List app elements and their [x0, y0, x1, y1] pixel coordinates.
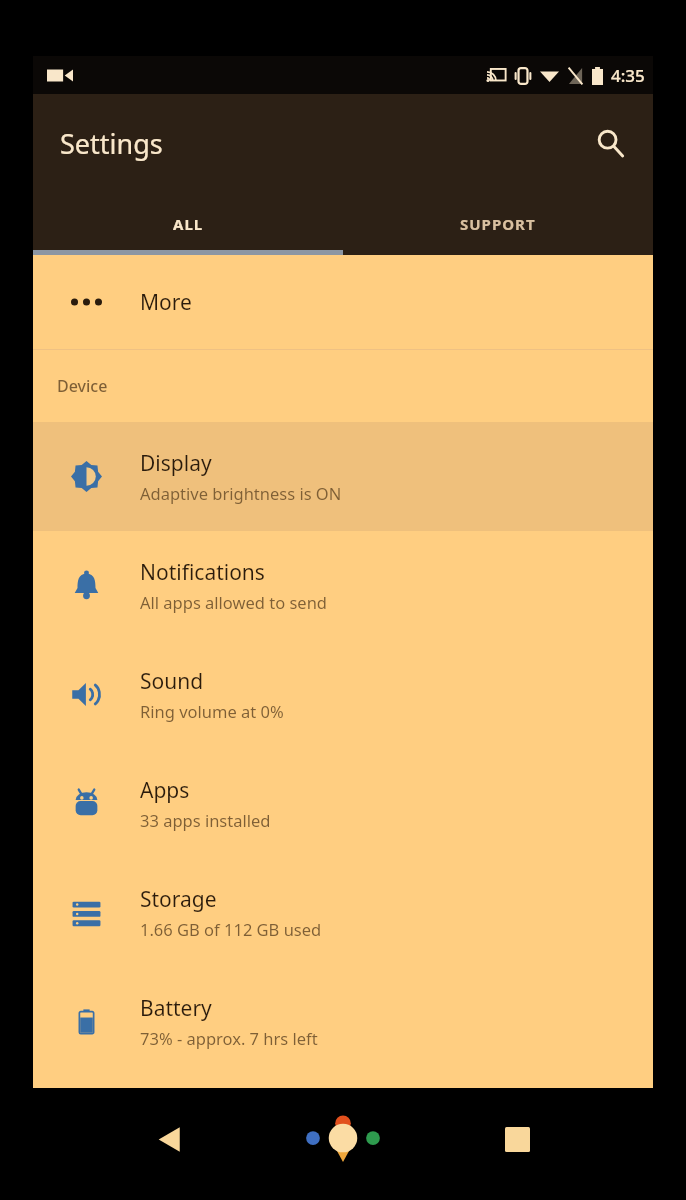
staticText: Battery	[140, 994, 212, 1023]
button[interactable]: Sound	[33, 640, 653, 749]
staticText: 33 apps installed	[140, 809, 271, 831]
button[interactable]: Storage	[33, 858, 653, 967]
staticText: More	[140, 288, 192, 317]
staticText: Storage	[140, 885, 217, 914]
staticText: Device	[57, 375, 108, 397]
button[interactable]: ALL	[33, 192, 343, 255]
button[interactable]: Recent apps	[480, 1102, 554, 1176]
staticText: Apps	[140, 776, 190, 805]
staticText: Notifications	[140, 558, 265, 587]
staticText: All apps allowed to send	[140, 591, 328, 613]
button[interactable]: Search	[583, 116, 637, 170]
button[interactable]: Battery	[33, 967, 653, 1076]
button[interactable]: Display	[33, 422, 653, 531]
staticText: Display	[140, 449, 212, 478]
button[interactable]: Back	[132, 1102, 206, 1176]
staticText: Adaptive brightness is ON	[140, 482, 342, 504]
staticText: 4:35	[611, 64, 645, 87]
staticText: Settings	[60, 125, 163, 162]
staticText: ALL	[173, 214, 204, 234]
button[interactable]: More	[33, 255, 653, 349]
staticText: Ring volume at 0%	[140, 700, 284, 722]
staticText: Sound	[140, 667, 204, 696]
button[interactable]: Notifications	[33, 531, 653, 640]
button[interactable]: Home	[288, 1102, 398, 1176]
button[interactable]: Apps	[33, 749, 653, 858]
staticText: 1.66 GB of 112 GB used	[140, 918, 322, 940]
staticText: 73% - approx. 7 hrs left	[140, 1027, 318, 1049]
button[interactable]: SUPPORT	[343, 192, 653, 255]
staticText: SUPPORT	[460, 214, 536, 234]
